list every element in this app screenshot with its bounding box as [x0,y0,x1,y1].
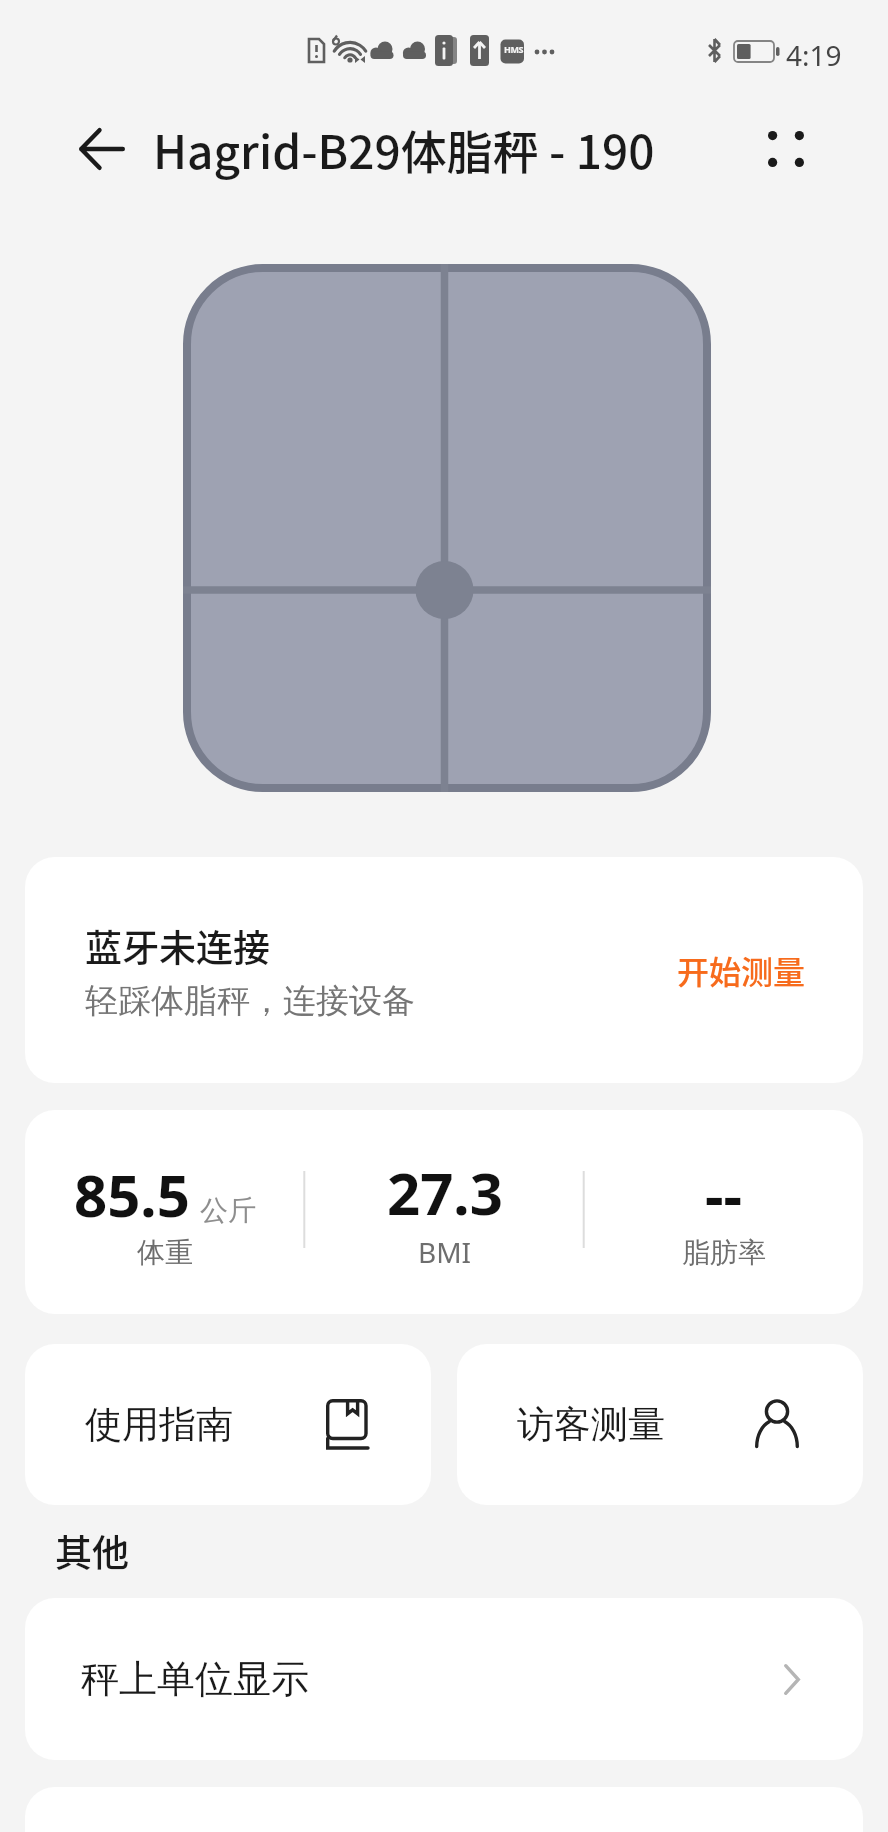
button[interactable]: Back [79,113,125,185]
staticText: 轻踩体脂秤，连接设备 [85,980,415,1022]
staticText: 公斤 [200,1193,256,1228]
staticText: 其他 [55,1524,129,1578]
button[interactable]: 使用指南 [25,1344,431,1505]
staticText: 85.5 [74,1155,190,1234]
staticText: 脂肪率 [682,1235,766,1270]
staticText: 访客测量 [517,1401,665,1448]
button[interactable]: 访客测量 [457,1344,863,1505]
button[interactable]: 秤上单位显示 [25,1598,863,1760]
staticText: 蓝牙未连接 [85,919,270,973]
staticText: Hagrid-B29体脂秤 - 190 [153,116,655,183]
staticText: 27.3 [387,1153,503,1232]
staticText: 秤上单位显示 [81,1655,309,1703]
staticText: BMI [418,1233,472,1271]
staticText: 4:19 [786,36,842,74]
button[interactable]: More options [750,113,822,185]
staticText: -- [705,1155,743,1234]
staticText: 开始测量 [677,947,806,993]
button[interactable]: 85.5 [25,1110,863,1314]
staticText: 使用指南 [85,1401,233,1448]
staticText: HMS [504,43,524,55]
button[interactable]: 蓝牙未连接 [25,857,863,1083]
button[interactable]: 开始测量 [655,933,828,1007]
staticText: 体重 [137,1235,193,1270]
